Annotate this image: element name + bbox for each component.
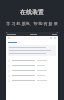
button[interactable]: Item icon [6,32,58,100]
button[interactable]: Item icon [6,73,58,78]
staticText: 学 习 机 系统、智 能 有 新 展 [6,21,58,26]
button[interactable]: Item icon [6,63,58,68]
button[interactable]: Item icon [6,58,58,63]
staticText: 在线装置 [20,8,44,16]
button[interactable]: Item icon [6,68,58,73]
button[interactable]: Item icon [6,78,58,83]
button[interactable] [8,42,58,43]
